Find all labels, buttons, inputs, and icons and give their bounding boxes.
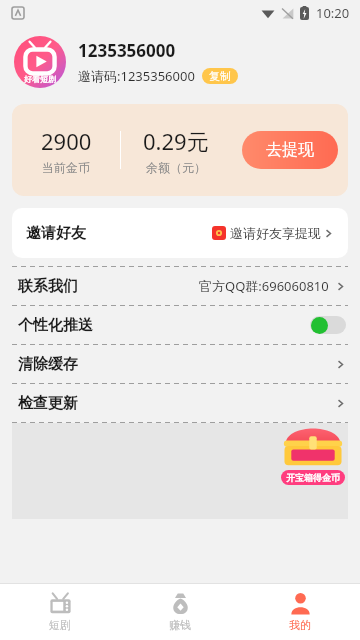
staticText: 好看短剧 bbox=[24, 74, 56, 84]
staticText: 个性化推送 bbox=[18, 316, 93, 335]
button[interactable]: 联系我们 bbox=[0, 267, 360, 305]
staticText: 联系我们 bbox=[18, 277, 78, 296]
staticText: 我的 bbox=[289, 618, 311, 632]
staticText: 复制 bbox=[209, 69, 231, 83]
other: Personalized push toggle bbox=[310, 316, 346, 334]
staticText: 清除缓存 bbox=[18, 355, 78, 374]
staticText: 1235356000 bbox=[78, 39, 176, 62]
staticText: 余额（元） bbox=[146, 160, 206, 175]
button[interactable]: 检查更新 bbox=[0, 384, 360, 422]
button[interactable]: 邀请好友 bbox=[12, 208, 348, 258]
staticText: 官方QQ群:696060810 bbox=[199, 277, 329, 295]
staticText: 邀请码:1235356000 bbox=[78, 67, 195, 85]
button[interactable]: 赚钱 bbox=[120, 584, 240, 640]
button[interactable]: 去提现 bbox=[242, 131, 338, 169]
button[interactable]: 短剧 bbox=[0, 584, 120, 640]
staticText: 0.29元 bbox=[143, 126, 209, 156]
staticText: 去提现 bbox=[266, 140, 314, 160]
staticText: 10:20 bbox=[316, 4, 350, 22]
button[interactable]: Avatar bbox=[14, 36, 66, 88]
staticText: 短剧 bbox=[49, 618, 71, 632]
staticText: 邀请好友 bbox=[26, 224, 86, 243]
button[interactable]: 复制 bbox=[202, 68, 238, 84]
staticText: 开宝箱得金币 bbox=[286, 472, 340, 483]
staticText: 检查更新 bbox=[18, 394, 78, 413]
staticText: 赚钱 bbox=[169, 618, 191, 632]
button[interactable]: Open treasure chest for coins bbox=[274, 423, 352, 485]
button[interactable]: 清除缓存 bbox=[0, 345, 360, 383]
button[interactable]: 个性化推送 bbox=[0, 306, 360, 344]
button[interactable]: 我的 bbox=[240, 584, 360, 640]
staticText: 2900 bbox=[41, 126, 92, 156]
staticText: 当前金币 bbox=[42, 160, 90, 175]
staticText: 邀请好友享提现 bbox=[230, 225, 321, 241]
